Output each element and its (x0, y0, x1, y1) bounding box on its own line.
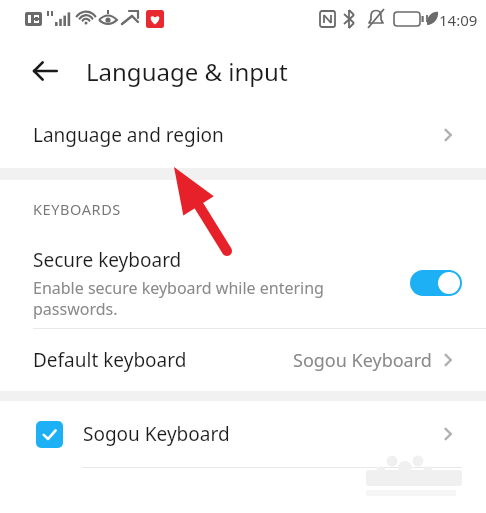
staticText: KEYBOARDS (33, 199, 121, 219)
staticText: Sogou Keyboard (83, 421, 230, 447)
button[interactable]: Secure keyboard toggle (410, 270, 462, 296)
button[interactable]: Language and region (0, 102, 486, 168)
staticText: Secure keyboard (33, 247, 182, 273)
staticText: Language and region (33, 122, 224, 148)
button[interactable]: Back (22, 48, 68, 94)
staticText: 14:09 (439, 10, 478, 30)
button[interactable]: Sogou Keyboard (0, 401, 486, 467)
staticText: Enable secure keyboard while entering pa… (33, 277, 396, 320)
staticText: Sogou Keyboard (293, 348, 432, 373)
staticText: Default keyboard (33, 347, 187, 373)
staticText: Language & input (86, 55, 288, 88)
button[interactable]: Secure keyboard (0, 238, 486, 328)
button[interactable]: Default keyboard (0, 329, 486, 391)
